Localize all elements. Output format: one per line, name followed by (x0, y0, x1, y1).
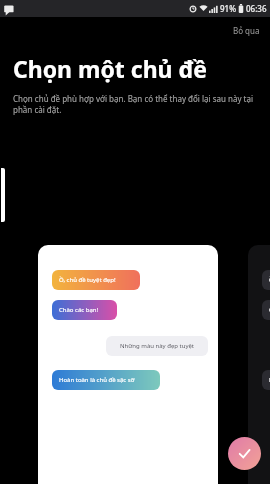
button[interactable]: Chào các bạn! (52, 300, 117, 320)
staticText: 06:36 (246, 3, 267, 14)
staticText: Hoàn toàn là chủ đề sặc sỡ (59, 376, 135, 384)
staticText: Chào các bạn! (59, 306, 99, 314)
button[interactable]: Ồ, chủ đề tuyệt đẹp! (262, 270, 270, 290)
button[interactable]: Ồ, chủ đề tuyệt đẹp! (38, 245, 218, 484)
button[interactable]: Những màu này đẹp tuyệt (106, 336, 208, 356)
button[interactable]: Bỏ qua (229, 22, 264, 39)
staticText: Chào các bạn! (269, 306, 270, 314)
staticText: Chọn chủ đề phù hợp với bạn. Bạn có thể … (13, 93, 260, 116)
button[interactable]: Hoàn toàn là chủ đề sặc sỡ (262, 370, 270, 390)
button[interactable]: Xác nhận chủ đề (228, 437, 261, 470)
button[interactable]: Ồ, chủ đề tuyệt đẹp! (248, 245, 270, 484)
staticText: Ồ, chủ đề tuyệt đẹp! (59, 276, 116, 284)
button[interactable]: Ồ, chủ đề tuyệt đẹp! (52, 270, 140, 290)
button[interactable]: Hoàn toàn là chủ đề sặc sỡ (52, 370, 160, 390)
staticText: Chọn một chủ đề (13, 53, 208, 84)
staticText: Ồ, chủ đề tuyệt đẹp! (269, 276, 270, 284)
button[interactable]: Chào các bạn! (262, 300, 270, 320)
staticText: Bỏ qua (233, 25, 260, 36)
staticText: Những màu này đẹp tuyệt (120, 342, 195, 350)
staticText: 91% (220, 3, 236, 14)
staticText: Hoàn toàn là chủ đề sặc sỡ (269, 376, 270, 384)
